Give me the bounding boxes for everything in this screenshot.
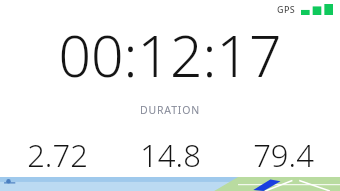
staticText: DURATION xyxy=(140,103,200,117)
staticText: CALORIES (KCAL) xyxy=(244,180,324,191)
staticText: 79.4 xyxy=(253,134,314,176)
button[interactable]: 14.8 xyxy=(114,134,227,191)
staticText: 14.8 xyxy=(140,134,201,176)
button[interactable]: 2.72 xyxy=(0,134,114,191)
staticText: 2.72 xyxy=(27,134,88,176)
button[interactable]: 79.4 xyxy=(227,134,340,191)
staticText: SPEED (MPH) xyxy=(140,180,202,191)
button[interactable]: 00:12:17 xyxy=(58,16,282,94)
button[interactable]: GPS signal strength xyxy=(275,1,335,17)
staticText: GPS xyxy=(277,3,296,15)
button[interactable]: Route map xyxy=(0,177,340,191)
staticText: DISTANCE (MI) xyxy=(23,180,92,191)
